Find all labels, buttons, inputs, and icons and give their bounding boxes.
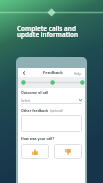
staticText: Help xyxy=(74,71,82,75)
button[interactable]: Select xyxy=(21,98,82,102)
staticText: Outcome of call xyxy=(21,90,49,95)
staticText: Select xyxy=(21,98,31,102)
button[interactable]: Help xyxy=(74,71,82,75)
staticText: Complete calls and update information xyxy=(17,24,79,39)
button[interactable] xyxy=(21,115,82,132)
staticText: (optional) xyxy=(50,109,63,113)
staticText: Other feedback xyxy=(21,108,49,113)
staticText: How was your call? xyxy=(21,136,55,141)
button[interactable]: Thumbs down xyxy=(54,144,82,159)
button[interactable]: Thumbs up xyxy=(21,144,49,159)
staticText: Feedback xyxy=(43,70,63,76)
button[interactable]: Back xyxy=(19,68,28,77)
